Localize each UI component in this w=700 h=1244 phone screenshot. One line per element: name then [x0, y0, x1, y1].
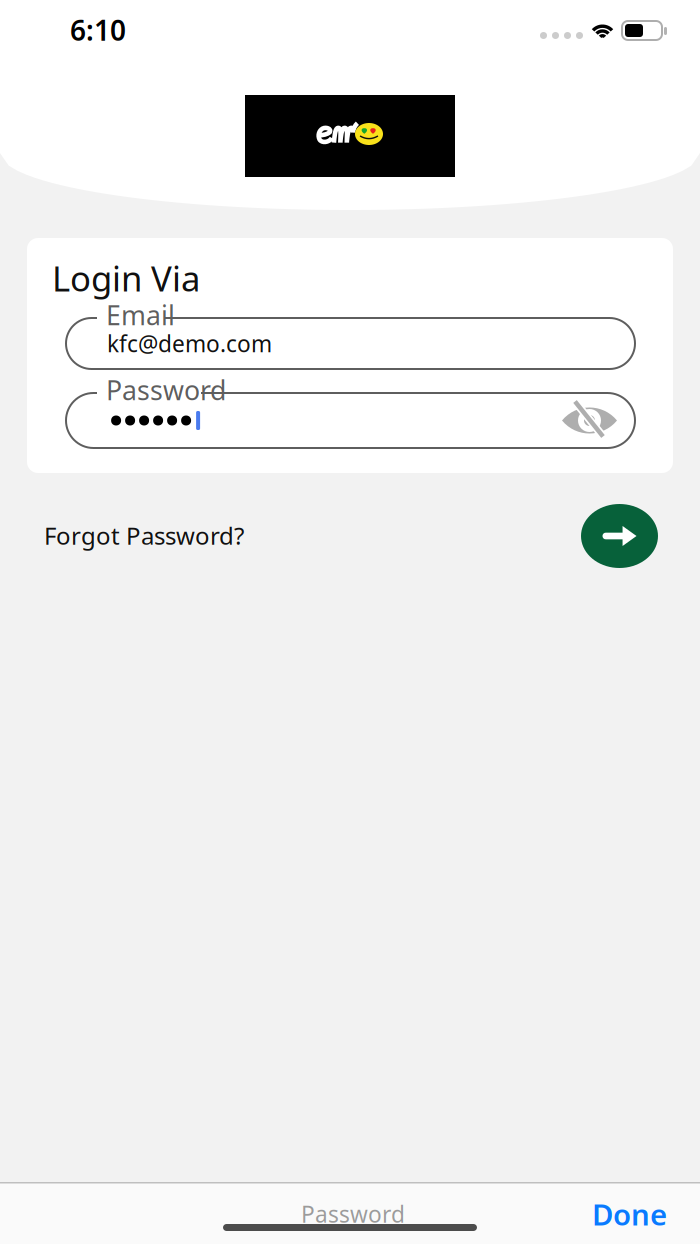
staticText: Login Via: [52, 255, 200, 301]
staticText: Done: [592, 1194, 667, 1233]
staticText: kfc@demo.com: [107, 328, 272, 358]
staticText: Password: [106, 372, 226, 408]
button[interactable]: Show password: [551, 393, 629, 448]
button[interactable]: Forgot Password?: [44, 504, 294, 567]
staticText: Forgot Password?: [44, 520, 244, 551]
staticText: 6:10: [70, 11, 126, 49]
staticText: Email: [106, 297, 175, 333]
button[interactable]: Continue: [581, 504, 658, 568]
staticText: Password: [301, 1199, 405, 1229]
button[interactable]: Done: [547, 1194, 667, 1234]
